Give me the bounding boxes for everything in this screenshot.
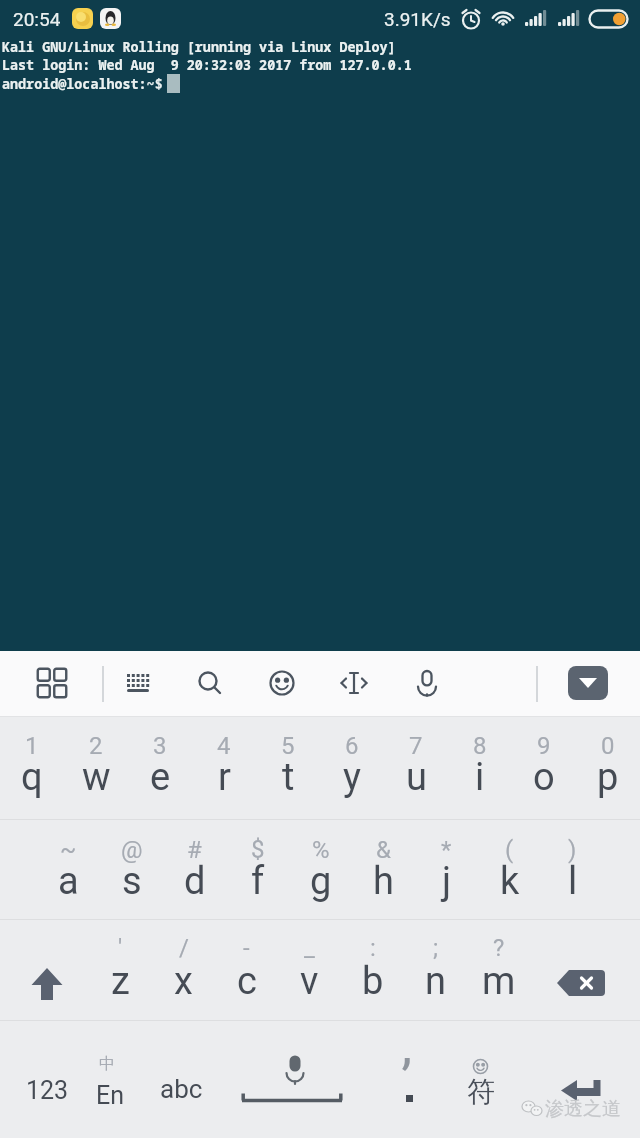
- button[interactable]: @: [100, 820, 163, 919]
- staticText: (: [505, 836, 514, 864]
- button[interactable]: 6: [320, 717, 384, 819]
- staticText: 6: [345, 732, 359, 760]
- staticText: c: [237, 959, 257, 1004]
- button[interactable]: ': [88, 920, 152, 1020]
- staticText: m: [482, 959, 516, 1004]
- staticText: &: [376, 836, 391, 864]
- button[interactable]: 123: [8, 1035, 86, 1138]
- button[interactable]: (: [478, 820, 541, 919]
- button[interactable]: -: [215, 920, 278, 1020]
- staticText: :: [370, 934, 376, 962]
- staticText: ;: [433, 934, 439, 962]
- staticText: f: [251, 859, 265, 904]
- button[interactable]: $: [226, 820, 289, 919]
- button[interactable]: &: [352, 820, 415, 919]
- button[interactable]: [28, 659, 76, 707]
- button[interactable]: [532, 1021, 632, 1138]
- staticText: d: [184, 859, 206, 904]
- staticText: j: [442, 859, 452, 904]
- button[interactable]: 中: [76, 1021, 144, 1138]
- staticText: t: [282, 755, 295, 800]
- staticText: h: [373, 859, 394, 904]
- button[interactable]: ?: [467, 920, 530, 1020]
- button[interactable]: 1: [0, 717, 64, 819]
- button[interactable]: _: [278, 920, 341, 1020]
- staticText: 2: [89, 732, 103, 760]
- button[interactable]: [568, 666, 608, 700]
- staticText: 7: [409, 732, 423, 760]
- staticText: -: [243, 934, 250, 962]
- staticText: En: [96, 1081, 125, 1110]
- button[interactable]: *: [415, 820, 478, 919]
- staticText: 0: [601, 732, 615, 760]
- button[interactable]: 9: [512, 717, 576, 819]
- staticText: k: [500, 859, 520, 904]
- staticText: 20:54: [13, 8, 61, 30]
- staticText: e: [150, 755, 171, 800]
- staticText: ?: [493, 934, 505, 962]
- button[interactable]: /: [152, 920, 215, 1020]
- staticText: o: [533, 755, 555, 800]
- staticText: z: [111, 959, 130, 1004]
- button[interactable]: [186, 659, 234, 707]
- button[interactable]: [258, 659, 306, 707]
- button[interactable]: #: [163, 820, 226, 919]
- staticText: 1: [25, 732, 39, 760]
- staticText: *: [441, 836, 452, 864]
- staticText: 5: [281, 732, 295, 760]
- button[interactable]: 7: [384, 717, 448, 819]
- staticText: b: [362, 959, 384, 1004]
- staticText: $: [251, 836, 265, 864]
- button[interactable]: [114, 659, 162, 707]
- button[interactable]: :: [341, 920, 404, 1020]
- button[interactable]: ~: [36, 820, 100, 919]
- staticText: 4: [217, 732, 231, 760]
- staticText: v: [300, 959, 319, 1004]
- button[interactable]: [0, 920, 88, 1020]
- button[interactable]: 5: [256, 717, 320, 819]
- staticText: _: [304, 934, 315, 962]
- staticText: 123: [26, 1076, 69, 1105]
- button[interactable]: ’: [372, 1021, 442, 1138]
- staticText: abc: [160, 1074, 203, 1104]
- button[interactable]: [216, 1021, 371, 1138]
- button[interactable]: 符: [442, 1021, 520, 1138]
- staticText: g: [310, 859, 332, 904]
- button[interactable]: [403, 659, 451, 707]
- button[interactable]: 8: [448, 717, 512, 819]
- staticText: a: [58, 859, 79, 904]
- button[interactable]: 0: [576, 717, 640, 819]
- staticText: n: [425, 959, 446, 1004]
- staticText: /: [179, 934, 189, 962]
- staticText: ': [118, 934, 123, 962]
- staticText: android@localhost:~$: [2, 75, 163, 93]
- staticText: s: [122, 859, 142, 904]
- staticText: q: [21, 755, 43, 800]
- button[interactable]: 2: [64, 717, 128, 819]
- button[interactable]: ;: [404, 920, 467, 1020]
- staticText: 8: [473, 732, 487, 760]
- staticText: u: [406, 755, 427, 800]
- staticText: ): [568, 836, 577, 864]
- staticText: l: [568, 859, 578, 904]
- button[interactable]: abc: [146, 1021, 216, 1138]
- staticText: ~: [60, 836, 77, 864]
- button[interactable]: %: [289, 820, 352, 919]
- staticText: Last login: Wed Aug 9 20:32:03 2017 from…: [2, 56, 412, 74]
- staticText: r: [218, 755, 231, 800]
- staticText: 渗透之道: [545, 1097, 621, 1121]
- staticText: 3: [153, 732, 167, 760]
- staticText: x: [174, 959, 193, 1004]
- button[interactable]: ): [541, 820, 604, 919]
- staticText: ’: [401, 1048, 412, 1111]
- staticText: #: [187, 836, 202, 864]
- staticText: 中: [99, 1054, 115, 1074]
- button[interactable]: 3: [128, 717, 192, 819]
- staticText: i: [475, 755, 485, 800]
- staticText: @: [121, 836, 143, 864]
- staticText: p: [597, 755, 619, 800]
- button[interactable]: [530, 920, 640, 1020]
- staticText: w: [82, 755, 111, 800]
- button[interactable]: 4: [192, 717, 256, 819]
- button[interactable]: [330, 659, 378, 707]
